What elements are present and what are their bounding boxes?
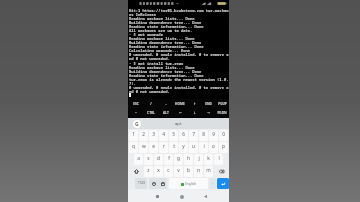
button[interactable]: i <box>199 142 208 153</box>
staticText: END <box>205 102 212 106</box>
button[interactable]: 0 <box>219 130 228 141</box>
button[interactable]: Back <box>197 190 213 202</box>
staticText: u <box>192 143 195 150</box>
button[interactable]: CTRL <box>143 108 158 117</box>
button[interactable]: e <box>149 142 158 153</box>
staticText: apt <box>175 121 182 127</box>
button[interactable]: o <box>209 142 218 153</box>
button[interactable]: 4 <box>159 130 168 141</box>
button[interactable]: f <box>164 154 173 165</box>
staticText: g <box>177 155 180 162</box>
button[interactable]: k <box>204 154 213 165</box>
staticText: y <box>182 143 185 150</box>
button[interactable]: h <box>184 154 193 165</box>
button[interactable]: p <box>219 142 228 153</box>
button[interactable]: HOME <box>173 99 187 108</box>
staticText: h <box>187 155 190 162</box>
button[interactable]: Gboard menu <box>133 120 141 128</box>
staticText: r <box>163 143 165 150</box>
button[interactable]: PGUP <box>215 99 229 108</box>
staticText: ↑ <box>193 102 196 106</box>
button[interactable]: Backspace <box>214 166 228 177</box>
staticText: ESC <box>133 102 139 106</box>
staticText: d <box>157 155 160 162</box>
staticText: l <box>218 155 220 162</box>
button[interactable]: u <box>189 142 198 153</box>
button[interactable]: ↓ <box>187 108 201 117</box>
staticText: a <box>137 155 140 162</box>
staticText: q <box>132 143 135 150</box>
button[interactable]: c <box>164 166 173 177</box>
button[interactable]: Recents <box>149 190 165 202</box>
staticText: Reading package lists... Done <box>129 36 195 40</box>
button[interactable]: x <box>154 166 163 177</box>
button[interactable]: - <box>158 99 173 108</box>
button[interactable]: ← <box>173 108 187 117</box>
button[interactable]: ALT <box>158 108 173 117</box>
button[interactable]: 7 <box>189 130 198 141</box>
button[interactable]: d <box>154 154 163 165</box>
button[interactable]: v <box>174 166 183 177</box>
button[interactable]: ?123 <box>135 178 147 189</box>
button[interactable]: y <box>179 142 188 153</box>
staticText: Reading state information... Done <box>129 44 204 48</box>
staticText: G <box>135 121 139 128</box>
button[interactable]: m <box>204 166 213 177</box>
button[interactable]: j <box>194 154 203 165</box>
button[interactable]: END <box>201 99 215 108</box>
staticText: 4 <box>162 131 165 138</box>
button[interactable]: PGDN <box>215 108 229 117</box>
staticText: ~ $ apt install tur-repo <box>129 61 184 65</box>
button[interactable]: 3 <box>149 130 158 141</box>
button[interactable]: ~ <box>128 108 143 117</box>
button[interactable]: Enter <box>217 178 229 189</box>
staticText: p <box>222 143 225 150</box>
button[interactable]: s <box>144 154 153 165</box>
button[interactable]: t <box>169 142 178 153</box>
button[interactable]: b <box>184 166 193 177</box>
button[interactable]: Emoji <box>149 178 158 189</box>
button[interactable]: 9 <box>209 130 218 141</box>
staticText: f <box>168 155 170 162</box>
button[interactable]: Shift <box>129 166 143 177</box>
button[interactable]: 8 <box>199 130 208 141</box>
button[interactable]: / <box>143 99 158 108</box>
staticText: t <box>173 143 175 150</box>
button[interactable]: w <box>139 142 148 153</box>
button[interactable]: 5 <box>169 130 178 141</box>
staticText: 1 <box>132 131 135 138</box>
button[interactable]: → <box>201 108 215 117</box>
staticText: nd 0 not upgraded. <box>129 89 170 93</box>
button[interactable]: 1 <box>129 130 138 141</box>
button[interactable]: 6 <box>179 130 188 141</box>
staticText: → <box>207 111 210 115</box>
button[interactable]: Home <box>174 190 190 202</box>
button[interactable]: English <box>169 178 208 189</box>
button[interactable]: n <box>194 166 203 177</box>
staticText: m <box>206 167 211 174</box>
staticText: w <box>142 143 146 150</box>
staticText: c <box>167 167 170 174</box>
staticText: - <box>165 102 167 106</box>
staticText: 0 upgraded, 0 newly installed, 0 to remo… <box>129 52 229 56</box>
button[interactable]: Clipboard <box>158 178 167 189</box>
button[interactable]: a <box>134 154 143 165</box>
button[interactable]: r <box>159 142 168 153</box>
staticText: PGUP <box>218 102 227 106</box>
button[interactable]: 2 <box>139 130 148 141</box>
staticText: Reading package lists... Done <box>129 65 195 69</box>
button[interactable]: l <box>214 154 223 165</box>
button[interactable]: g <box>174 154 183 165</box>
staticText: z <box>147 167 150 174</box>
button[interactable]: z <box>144 166 153 177</box>
button[interactable]: ↑ <box>187 99 201 108</box>
staticText: 9 <box>212 131 215 138</box>
button[interactable]: ESC <box>128 99 143 108</box>
staticText: ?123 <box>138 181 145 185</box>
button[interactable]: . <box>209 178 216 189</box>
staticText: 8 <box>202 131 205 138</box>
staticText: b <box>187 167 190 174</box>
staticText: ← <box>179 111 182 115</box>
button[interactable]: q <box>129 142 138 153</box>
staticText: Reading state information... Done <box>129 24 204 28</box>
